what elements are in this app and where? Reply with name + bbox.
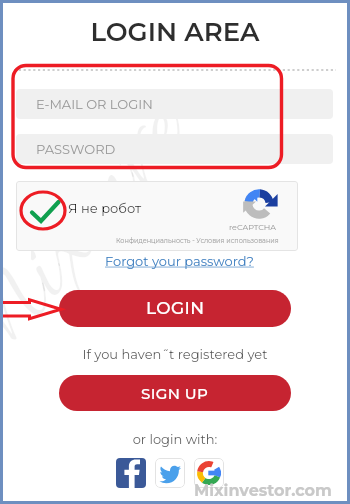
button[interactable]: E-MAIL OR LOGIN <box>16 89 333 119</box>
staticText: Я не робот <box>68 200 142 216</box>
staticText: If you haven˝t registered yet <box>0 346 350 362</box>
button[interactable]: Login with Facebook <box>116 458 146 488</box>
button[interactable]: PASSWORD <box>16 134 333 164</box>
staticText: LOGIN AREA <box>0 16 350 48</box>
staticText: Конфиденциальность - Условия использован… <box>116 237 279 245</box>
staticText: PASSWORD <box>36 141 116 157</box>
staticText: E-MAIL OR LOGIN <box>36 96 153 112</box>
button[interactable]: Я не робот <box>16 181 298 251</box>
staticText: reCAPTCHA <box>229 222 277 232</box>
button[interactable]: Login with Google <box>194 458 224 488</box>
button[interactable]: Login with Twitter <box>155 458 185 488</box>
button[interactable]: Forgot your password? <box>105 253 254 269</box>
staticText: SIGN UP <box>141 384 209 402</box>
staticText: Mixinvestor.com <box>194 481 332 501</box>
button[interactable]: LOGIN <box>59 290 291 327</box>
staticText: Mixinvestor <box>0 72 230 432</box>
staticText: or login with: <box>0 431 350 447</box>
staticText: LOGIN <box>146 298 205 319</box>
button[interactable]: SIGN UP <box>59 375 291 411</box>
